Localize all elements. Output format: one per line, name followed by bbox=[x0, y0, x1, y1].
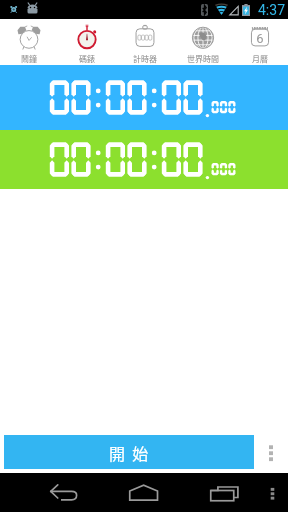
staticText: 鬧鐘 bbox=[21, 53, 37, 65]
button[interactable]: Back bbox=[0, 473, 104, 512]
button[interactable]: Home bbox=[104, 473, 184, 512]
button[interactable]: 開 始 bbox=[4, 435, 254, 469]
staticText: 計時器 bbox=[133, 53, 157, 65]
button[interactable]: 計時器 bbox=[116, 19, 174, 65]
button[interactable]: Recent apps bbox=[184, 473, 248, 512]
staticText: 開 始 bbox=[109, 441, 149, 464]
button[interactable]: 世界時間 bbox=[174, 19, 232, 65]
staticText: 碼錶 bbox=[79, 53, 95, 65]
button[interactable]: More options bbox=[254, 435, 288, 469]
button[interactable]: 6 bbox=[232, 19, 288, 65]
button[interactable]: More options bbox=[248, 473, 288, 512]
button[interactable]: 碼錶 bbox=[58, 19, 116, 65]
staticText: 世界時間 bbox=[187, 53, 219, 65]
staticText: 6 bbox=[256, 31, 264, 46]
staticText: 月曆 bbox=[252, 53, 268, 65]
button[interactable]: 鬧鐘 bbox=[0, 19, 58, 65]
staticText: 4:37 bbox=[258, 2, 285, 18]
